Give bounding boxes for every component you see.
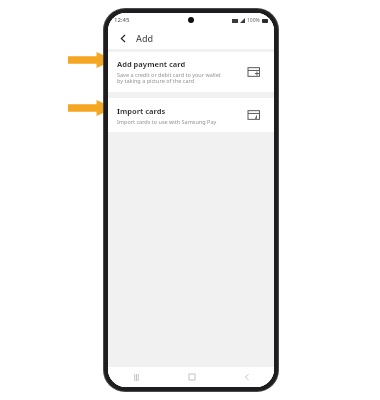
button[interactable]: Import cards [108,98,274,132]
staticText: Import cards to use with Samsung Pay [117,118,217,125]
button[interactable]: Back [115,30,131,46]
staticText: Add payment card [117,59,186,69]
button[interactable]: Home [164,367,219,387]
staticText: Add [136,32,154,44]
button[interactable]: Back [219,367,274,387]
button[interactable]: Add payment card [108,52,274,92]
staticText: 100% [247,17,260,24]
staticText: Import cards [117,106,166,116]
staticText: Save a credit or debit card to your wall… [117,71,221,85]
button[interactable]: Recents [108,367,164,387]
staticText: 12:45 [114,16,130,24]
